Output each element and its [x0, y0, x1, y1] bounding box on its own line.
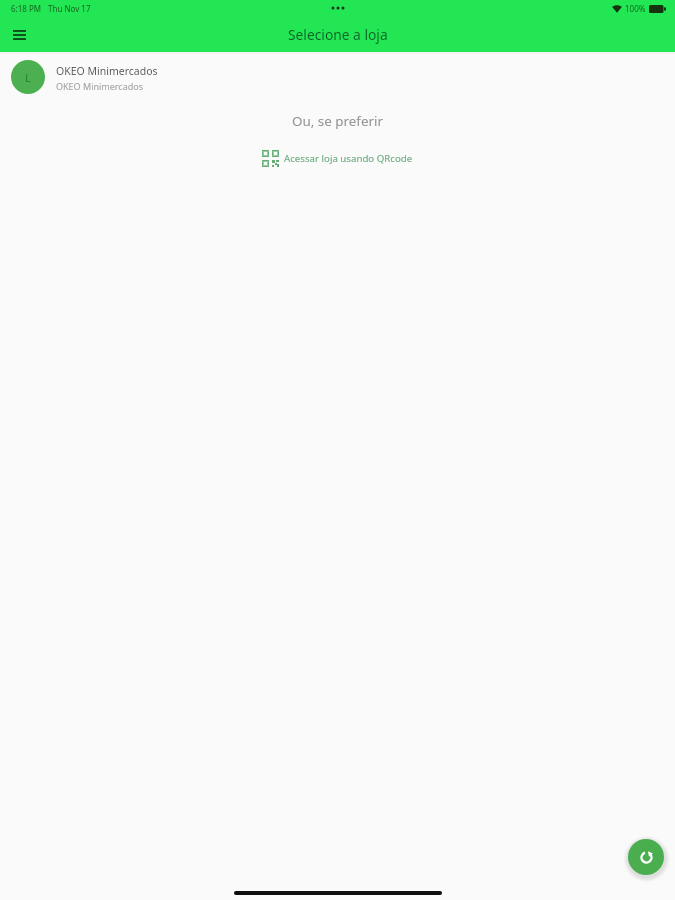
button[interactable]: Refresh [628, 839, 664, 875]
staticText: Ou, se preferir [0, 112, 675, 130]
staticText: 6:18 PM [11, 3, 42, 14]
staticText: L [25, 70, 31, 85]
staticText: Acessar loja usando QRcode [284, 152, 413, 165]
button[interactable]: Menu [6, 22, 32, 48]
staticText: OKEO Minimercados [56, 64, 158, 78]
staticText: Selecione a loja [288, 25, 388, 44]
staticText: 100% [625, 3, 646, 14]
button[interactable]: L [0, 52, 675, 102]
button[interactable]: Acessar loja usando QRcode [256, 146, 419, 171]
staticText: OKEO Minimercados [56, 80, 144, 92]
staticText: Thu Nov 17 [48, 3, 91, 14]
